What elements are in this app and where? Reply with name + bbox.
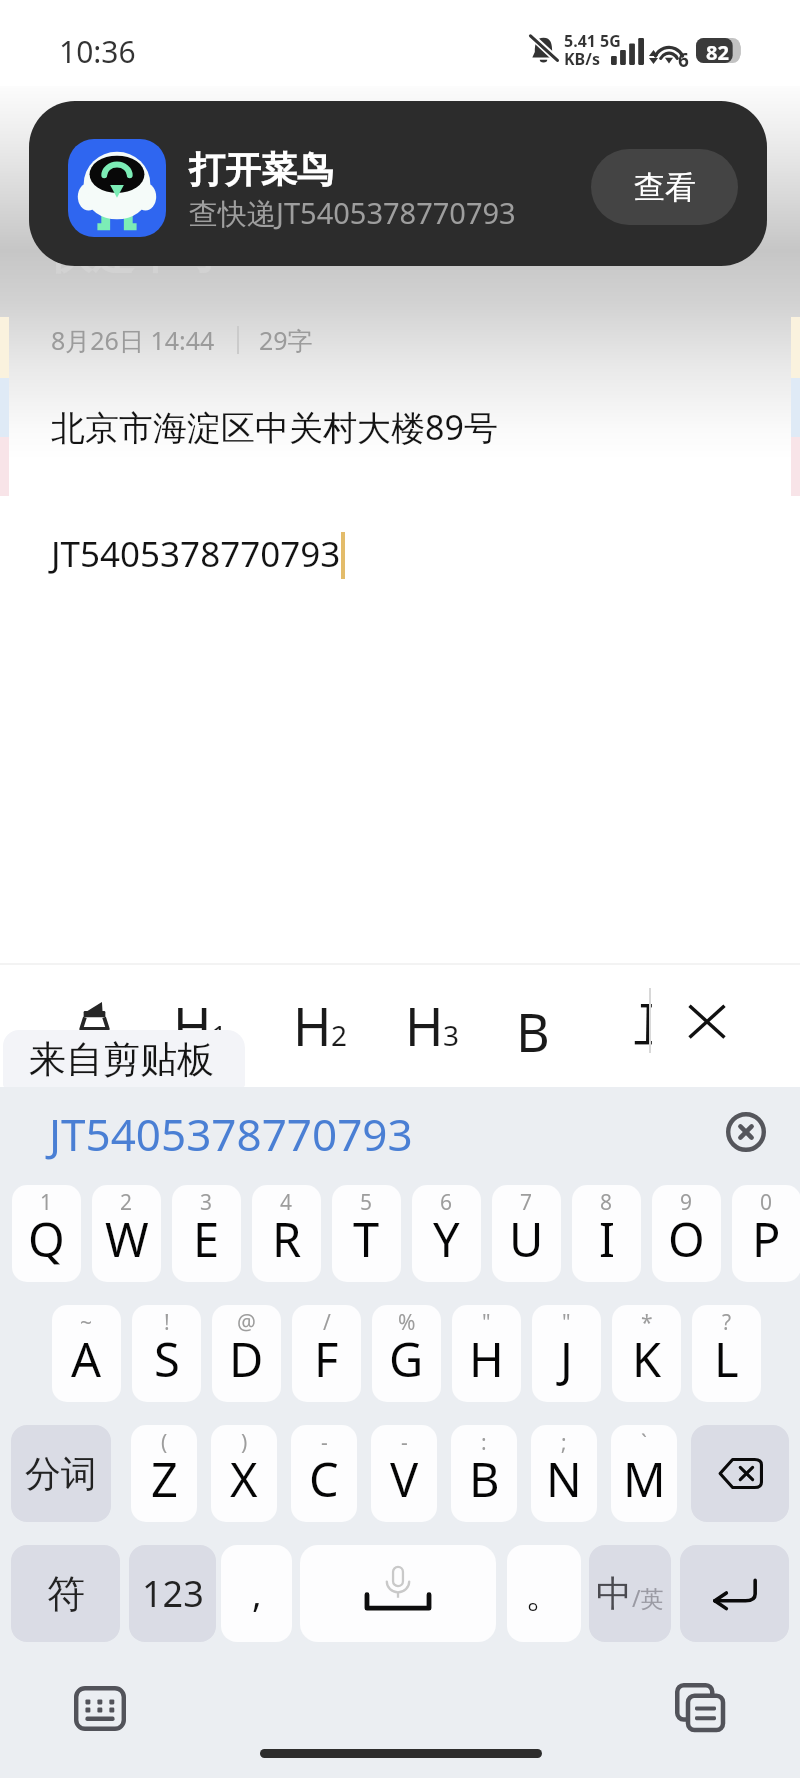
staticText: /: [323, 1308, 331, 1337]
button[interactable]: %: [372, 1305, 441, 1402]
staticText: :: [481, 1428, 487, 1457]
button[interactable]: Keyboard: [66, 1678, 134, 1739]
staticText: 打开菜鸟: [189, 147, 333, 192]
button[interactable]: *: [612, 1305, 681, 1402]
button[interactable]: !: [132, 1305, 201, 1402]
button[interactable]: ): [211, 1425, 277, 1522]
staticText: P: [752, 1207, 781, 1271]
staticText: 中: [596, 1571, 632, 1616]
button[interactable]: -: [371, 1425, 437, 1522]
staticText: H: [293, 990, 332, 1050]
staticText: ": [562, 1308, 571, 1337]
button[interactable]: :: [451, 1425, 517, 1522]
staticText: 2: [331, 1016, 348, 1054]
staticText: -: [321, 1428, 328, 1457]
button[interactable]: 5: [332, 1185, 401, 1282]
button[interactable]: (: [131, 1425, 197, 1522]
button[interactable]: JT5405378770793: [49, 1104, 413, 1164]
button[interactable]: `: [611, 1425, 677, 1522]
staticText: Y: [433, 1207, 460, 1271]
staticText: 1: [211, 1016, 228, 1054]
button[interactable]: Italic: [628, 998, 662, 1048]
button[interactable]: ~: [52, 1305, 121, 1402]
staticText: J: [560, 1327, 573, 1391]
button[interactable]: H: [173, 990, 241, 1050]
button[interactable]: Enter: [680, 1545, 789, 1642]
button[interactable]: ;: [531, 1425, 597, 1522]
staticText: 29字: [259, 323, 313, 357]
button[interactable]: 9: [652, 1185, 721, 1282]
button[interactable]: 分词: [11, 1425, 111, 1522]
staticText: H: [173, 990, 212, 1050]
button[interactable]: 123: [129, 1545, 216, 1642]
button[interactable]: 3: [172, 1185, 241, 1282]
staticText: W: [105, 1207, 149, 1271]
staticText: O: [668, 1207, 705, 1271]
button[interactable]: ": [532, 1305, 601, 1402]
staticText: H: [469, 1327, 504, 1391]
staticText: (: [161, 1428, 168, 1457]
staticText: ?: [722, 1308, 732, 1337]
button[interactable]: 8: [572, 1185, 641, 1282]
button[interactable]: 打开菜鸟: [29, 101, 767, 266]
button[interactable]: Backspace: [691, 1425, 789, 1522]
staticText: ~: [80, 1308, 93, 1337]
button[interactable]: 7: [492, 1185, 561, 1282]
button[interactable]: Highlight: [66, 989, 124, 1045]
staticText: F: [314, 1327, 339, 1391]
button[interactable]: Space: [300, 1545, 496, 1642]
button[interactable]: 查看: [591, 149, 738, 225]
button[interactable]: 符: [11, 1545, 120, 1642]
staticText: 8: [600, 1188, 613, 1217]
staticText: 10:36: [59, 31, 136, 72]
staticText: N: [546, 1447, 582, 1511]
staticText: I: [599, 1207, 615, 1271]
staticText: -: [401, 1428, 408, 1457]
staticText: K: [632, 1327, 662, 1391]
staticText: 。: [525, 1570, 563, 1618]
button[interactable]: 0: [732, 1185, 800, 1282]
staticText: 82: [706, 39, 729, 66]
button[interactable]: 中: [589, 1545, 671, 1642]
staticText: 3: [443, 1016, 460, 1054]
staticText: V: [390, 1447, 419, 1511]
staticText: S: [154, 1327, 180, 1391]
staticText: X: [230, 1447, 258, 1511]
button[interactable]: 来自剪贴板: [3, 1030, 245, 1088]
button[interactable]: @: [212, 1305, 281, 1402]
staticText: T: [353, 1207, 380, 1271]
button[interactable]: 。: [507, 1545, 581, 1642]
button[interactable]: 6: [412, 1185, 481, 1282]
staticText: 5.41: [564, 30, 596, 52]
staticText: ;: [561, 1428, 567, 1457]
staticText: 分词: [25, 1451, 97, 1496]
staticText: *: [641, 1308, 653, 1337]
staticText: Q: [28, 1207, 65, 1271]
button[interactable]: Close: [684, 998, 730, 1044]
button[interactable]: 2: [92, 1185, 161, 1282]
button[interactable]: 4: [252, 1185, 321, 1282]
button[interactable]: ": [452, 1305, 521, 1402]
staticText: 5G: [600, 30, 621, 52]
button[interactable]: Clear: [718, 1104, 774, 1160]
staticText: 7: [520, 1188, 533, 1217]
staticText: 9: [680, 1188, 693, 1217]
button[interactable]: ,: [221, 1545, 292, 1642]
button[interactable]: Clipboard: [667, 1675, 733, 1740]
button[interactable]: H: [405, 990, 473, 1050]
staticText: 来自剪贴板: [29, 1036, 214, 1083]
staticText: KB/s: [564, 48, 600, 70]
button[interactable]: -: [291, 1425, 357, 1522]
button[interactable]: /: [292, 1305, 361, 1402]
button[interactable]: H: [293, 990, 361, 1050]
staticText: %: [398, 1308, 416, 1337]
staticText: A: [71, 1327, 102, 1391]
staticText: 0: [760, 1188, 773, 1217]
staticText: C: [309, 1447, 339, 1511]
staticText: B: [469, 1447, 500, 1511]
staticText: G: [389, 1327, 424, 1391]
button[interactable]: B: [516, 996, 550, 1067]
button[interactable]: 1: [12, 1185, 81, 1282]
staticText: @: [237, 1308, 256, 1337]
button[interactable]: ?: [692, 1305, 761, 1402]
